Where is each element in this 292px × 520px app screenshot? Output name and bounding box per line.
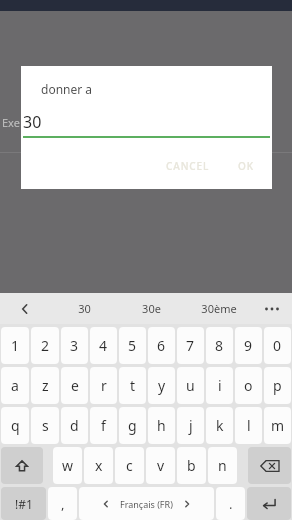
button[interactable]: 30ème xyxy=(185,293,252,324)
staticText: OK xyxy=(238,159,254,173)
staticText: !#1 xyxy=(15,496,33,512)
button[interactable]: l xyxy=(235,407,262,444)
staticText: v xyxy=(157,456,165,475)
button[interactable]: m xyxy=(264,407,291,444)
staticText: y xyxy=(158,376,166,395)
button[interactable]: 7 xyxy=(177,327,204,364)
staticText: s xyxy=(42,416,49,435)
staticText: 9 xyxy=(244,336,253,355)
staticText: 30ème xyxy=(201,301,237,316)
staticText: x xyxy=(95,456,103,475)
button[interactable]: 30 xyxy=(50,293,118,324)
button[interactable]: n xyxy=(208,447,237,484)
button[interactable]: 4 xyxy=(90,327,117,364)
button[interactable]: 9 xyxy=(235,327,262,364)
staticText: 1 xyxy=(11,336,20,355)
button[interactable]: o xyxy=(235,367,262,404)
staticText: r xyxy=(101,376,107,395)
staticText: Français (FR) xyxy=(120,498,173,510)
button[interactable]: y xyxy=(148,367,175,404)
button[interactable]: 6 xyxy=(148,327,175,364)
button[interactable]: CANCEL xyxy=(157,154,219,178)
staticText: 7 xyxy=(186,336,195,355)
button[interactable]: Previous suggestions xyxy=(0,293,50,324)
staticText: a xyxy=(11,376,19,395)
staticText: b xyxy=(187,456,196,475)
button[interactable]: z xyxy=(31,367,59,404)
button[interactable]: Enter xyxy=(247,487,291,520)
staticText: l xyxy=(247,416,251,435)
button[interactable]: c xyxy=(115,447,144,484)
button[interactable]: s xyxy=(31,407,59,444)
staticText: h xyxy=(157,416,166,435)
button[interactable]: r xyxy=(90,367,117,404)
button[interactable]: a xyxy=(1,367,29,404)
button[interactable]: x xyxy=(84,447,113,484)
button[interactable]: h xyxy=(148,407,175,444)
staticText: Exe xyxy=(2,115,20,130)
button[interactable]: i xyxy=(206,367,233,404)
button[interactable]: g xyxy=(119,407,146,444)
staticText: f xyxy=(101,416,106,435)
button[interactable]: Backspace xyxy=(248,447,291,484)
staticText: 30 xyxy=(78,301,91,316)
button[interactable]: u xyxy=(177,367,204,404)
button[interactable]: Français (FR) xyxy=(79,487,214,520)
staticText: 30 xyxy=(23,111,42,133)
button[interactable]: k xyxy=(206,407,233,444)
staticText: 30e xyxy=(142,301,161,316)
button[interactable]: 30e xyxy=(118,293,185,324)
button[interactable]: More options xyxy=(252,293,292,324)
staticText: e xyxy=(71,376,79,395)
button[interactable]: !#1 xyxy=(1,487,46,520)
staticText: 8 xyxy=(215,336,224,355)
button[interactable]: p xyxy=(264,367,291,404)
button[interactable]: w xyxy=(53,447,82,484)
staticText: donner a xyxy=(41,81,93,97)
staticText: t xyxy=(130,376,136,395)
button[interactable]: f xyxy=(90,407,117,444)
button[interactable]: 1 xyxy=(1,327,29,364)
staticText: m xyxy=(271,416,285,435)
button[interactable]: e xyxy=(61,367,88,404)
staticText: u xyxy=(186,376,195,395)
button[interactable]: 8 xyxy=(206,327,233,364)
button[interactable]: 2 xyxy=(31,327,59,364)
button[interactable]: d xyxy=(61,407,88,444)
button[interactable]: , xyxy=(48,487,77,520)
staticText: c xyxy=(126,456,133,475)
button[interactable]: q xyxy=(1,407,29,444)
button[interactable]: 3 xyxy=(61,327,88,364)
staticText: 2 xyxy=(41,336,50,355)
staticText: 4 xyxy=(99,336,108,355)
button[interactable]: v xyxy=(146,447,175,484)
staticText: z xyxy=(42,376,49,395)
staticText: w xyxy=(62,456,74,475)
staticText: p xyxy=(273,376,282,395)
staticText: 6 xyxy=(157,336,166,355)
staticText: , xyxy=(61,495,65,513)
staticText: i xyxy=(218,376,222,395)
staticText: . xyxy=(229,495,233,513)
staticText: 3 xyxy=(70,336,79,355)
staticText: j xyxy=(189,416,193,435)
staticText: 0 xyxy=(273,336,282,355)
staticText: n xyxy=(218,456,227,475)
staticText: CANCEL xyxy=(166,159,210,173)
staticText: g xyxy=(128,416,137,435)
button[interactable]: Shift xyxy=(1,447,43,484)
button[interactable]: 5 xyxy=(119,327,146,364)
button[interactable]: 0 xyxy=(264,327,291,364)
button[interactable]: . xyxy=(216,487,245,520)
button[interactable]: OK xyxy=(229,154,263,178)
staticText: d xyxy=(70,416,79,435)
staticText: o xyxy=(244,376,253,395)
button[interactable]: t xyxy=(119,367,146,404)
button[interactable]: j xyxy=(177,407,204,444)
staticText: q xyxy=(11,416,20,435)
staticText: k xyxy=(216,416,224,435)
staticText: 5 xyxy=(128,336,137,355)
button[interactable]: b xyxy=(177,447,206,484)
